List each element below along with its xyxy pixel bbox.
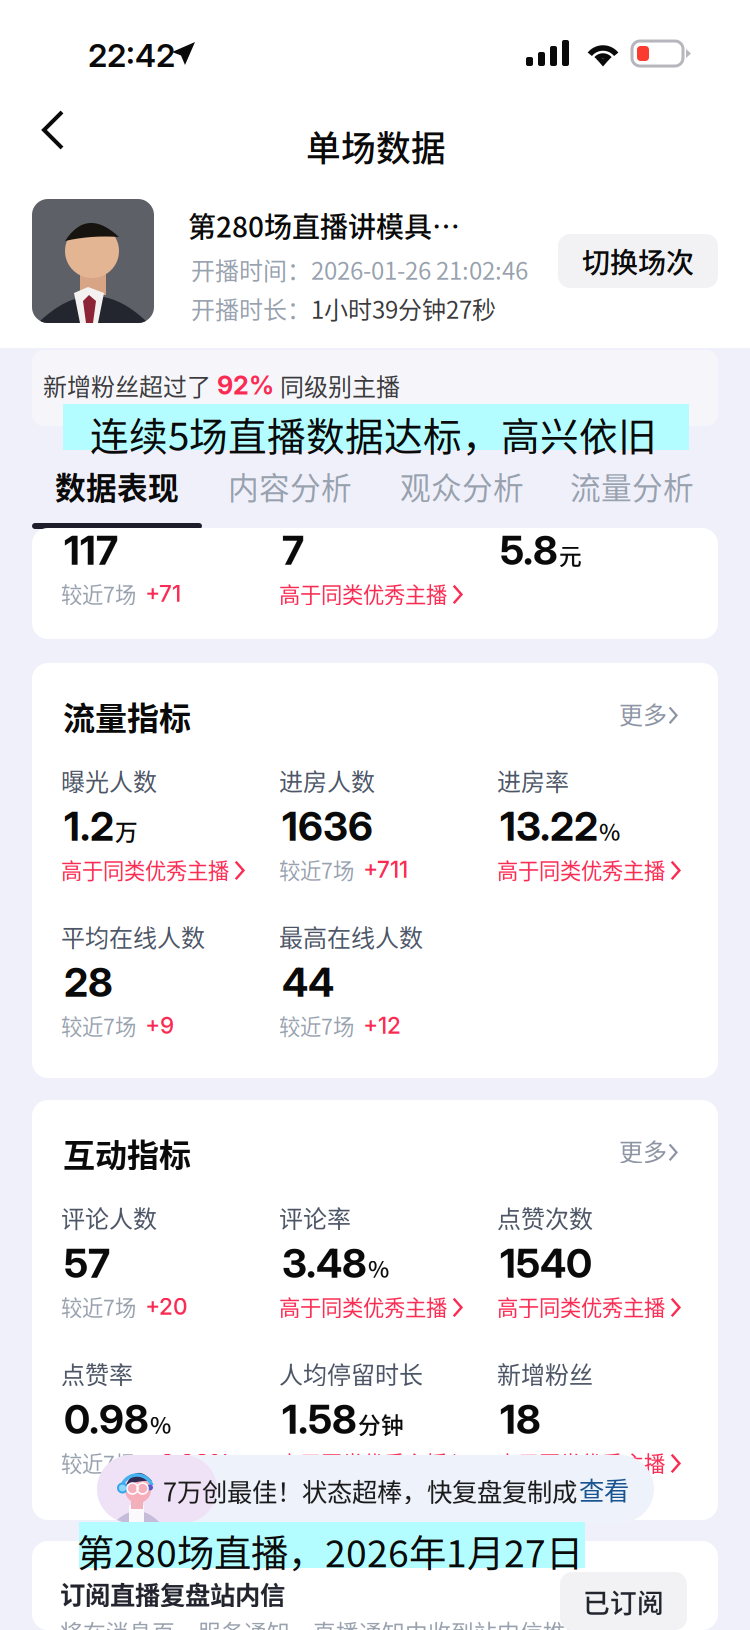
staticText: 人均停留时长 (279, 1356, 423, 1391)
staticText: % (368, 1252, 389, 1284)
staticText: 流量指标 (63, 693, 191, 739)
staticText: 查看 (579, 1471, 629, 1507)
button[interactable]: 切换场次 (558, 234, 718, 288)
staticText: 流量分析 (570, 464, 694, 508)
button[interactable]: 高于同类优秀主播 (279, 1447, 464, 1478)
staticText: +71 (145, 580, 181, 607)
staticText: % (599, 815, 620, 847)
staticText: 互动指标 (63, 1130, 191, 1176)
staticText: 高于同类优秀主播 (497, 1447, 665, 1478)
staticText: 5.8 (500, 526, 558, 574)
button[interactable]: 更多 (619, 1133, 679, 1168)
button[interactable]: 查看 (578, 1472, 630, 1506)
button[interactable]: 高于同类优秀主播 (497, 1447, 682, 1478)
staticText: +12 (363, 1012, 401, 1039)
staticText: +0.08% (145, 1449, 231, 1476)
staticText: 更多 (619, 1133, 667, 1168)
staticText: 元 (559, 539, 582, 571)
staticText: 92% (211, 370, 280, 401)
button[interactable]: 高于同类优秀主播 (497, 854, 682, 885)
staticText: 高于同类优秀主播 (497, 854, 665, 885)
staticText: 切换场次 (582, 241, 694, 281)
staticText: 将在消息页、服务通知、直播通知中收到站内信推送 (60, 1615, 589, 1630)
staticText: 评论人数 (61, 1200, 157, 1235)
staticText: 开播时长： (191, 291, 311, 326)
staticText: 1.2 (64, 802, 114, 850)
button[interactable]: 高于同类优秀主播 (61, 854, 246, 885)
staticText: 订阅直播复盘站内信 (60, 1575, 285, 1612)
staticText: 内容分析 (228, 464, 352, 508)
staticText: 0.98 (64, 1395, 149, 1443)
staticText: % (150, 1408, 171, 1440)
staticText: 57 (64, 1239, 110, 1287)
staticText: 平均在线人数 (61, 919, 205, 954)
staticText: 1636 (282, 802, 373, 850)
staticText: 开播时间： (191, 252, 311, 287)
staticText: 第280场直播，2026年1月27日 (77, 1524, 583, 1578)
staticText: 高于同类优秀主播 (497, 1291, 665, 1322)
staticText: 2026-01-26 21:02:46 (311, 252, 528, 287)
button[interactable]: 返回 (24, 100, 94, 162)
staticText: 高于同类优秀主播 (61, 854, 229, 885)
staticText: 高于同类优秀主播 (279, 578, 447, 609)
button[interactable]: 已订阅 (560, 1572, 687, 1630)
staticText: 7 (282, 526, 304, 574)
staticText: 13.22 (500, 802, 598, 850)
staticText: 较近7场 (61, 1291, 136, 1322)
staticText: 已订阅 (583, 1582, 664, 1620)
staticText: 更多 (619, 696, 667, 731)
button[interactable]: 高于同类优秀主播 (279, 578, 464, 609)
staticText: 高于同类优秀主播 (279, 1291, 447, 1322)
staticText: 数据表现 (55, 464, 179, 508)
staticText: 7万创最佳！状态超棒，快复盘复制成 (163, 1472, 577, 1509)
staticText: 单场数据 (306, 121, 446, 171)
button[interactable]: 观众分析 (376, 460, 548, 512)
staticText: 连续5场直播数据达标，高兴依旧 (90, 406, 657, 462)
button[interactable]: 内容分析 (204, 460, 376, 512)
staticText: 第280场直播讲模具… (188, 205, 460, 245)
staticText: 1.58 (282, 1395, 357, 1443)
staticText: 22:42 (88, 36, 175, 75)
staticText: 新增粉丝 (497, 1356, 593, 1391)
staticText: 3.48 (282, 1239, 367, 1287)
staticText: 1小时39分钟27秒 (311, 291, 496, 326)
staticText: +711 (363, 856, 408, 883)
button[interactable]: 高于同类优秀主播 (497, 1291, 682, 1322)
staticText: 高于同类优秀主播 (279, 1447, 447, 1478)
button[interactable]: 更多 (619, 696, 679, 731)
staticText: 较近7场 (279, 854, 354, 885)
staticText: 同级别主播 (280, 368, 400, 403)
staticText: 点赞次数 (497, 1200, 593, 1235)
staticText: 28 (64, 958, 113, 1006)
staticText: 万 (115, 815, 138, 847)
staticText: 进房率 (497, 763, 569, 798)
staticText: 分钟 (358, 1408, 404, 1440)
staticText: 观众分析 (400, 464, 524, 508)
staticText: 44 (282, 958, 334, 1006)
staticText: 较近7场 (61, 1447, 136, 1478)
staticText: 18 (500, 1395, 541, 1443)
staticText: 较近7场 (61, 578, 136, 609)
staticText: 最高在线人数 (279, 919, 423, 954)
button[interactable]: 流量分析 (546, 460, 718, 512)
staticText: 评论率 (279, 1200, 351, 1235)
staticText: 进房人数 (279, 763, 375, 798)
staticText: 117 (64, 526, 118, 574)
staticText: 曝光人数 (61, 763, 157, 798)
staticText: +20 (145, 1293, 188, 1320)
staticText: 较近7场 (279, 1010, 354, 1041)
staticText: +9 (145, 1012, 174, 1039)
button[interactable]: 高于同类优秀主播 (279, 1291, 464, 1322)
staticText: 1540 (500, 1239, 592, 1287)
button[interactable]: 数据表现 (32, 460, 202, 512)
staticText: 较近7场 (61, 1010, 136, 1041)
staticText: 点赞率 (61, 1356, 133, 1391)
staticText: 新增粉丝超过了 (43, 368, 211, 403)
